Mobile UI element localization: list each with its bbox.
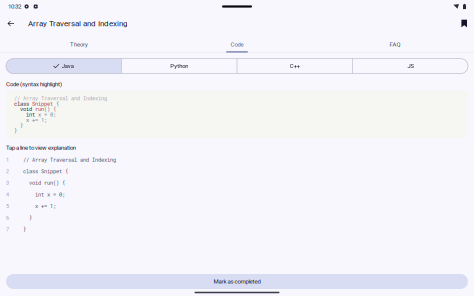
staticText: } <box>14 122 23 129</box>
button[interactable]: Code <box>158 34 316 52</box>
staticText: Python <box>170 63 188 70</box>
staticText: x += 1; <box>23 202 56 209</box>
staticText: FAQ <box>389 41 400 48</box>
button[interactable]: Bookmark <box>455 13 467 34</box>
button[interactable]: Back <box>7 13 21 34</box>
button[interactable]: FAQ <box>316 34 474 52</box>
staticText: Code <box>230 41 243 48</box>
staticText: class <box>14 100 32 107</box>
staticText: 7 <box>6 226 9 233</box>
button[interactable]: 5 <box>6 200 468 212</box>
button[interactable]: 2 <box>6 165 468 177</box>
staticText: int x = 0; <box>23 191 65 198</box>
staticText: 2 <box>6 168 9 175</box>
staticText: class Snippet { <box>23 168 68 175</box>
staticText: 1 <box>6 156 9 163</box>
staticText: Array Traversal and Indexing <box>28 19 127 28</box>
staticText: 10:32 <box>8 3 21 10</box>
staticText: 6 <box>6 214 9 221</box>
staticText: Code (syntax highlight) <box>6 81 62 88</box>
staticText: run <box>35 105 44 112</box>
staticText: 0 <box>50 111 53 118</box>
staticText: void run() { <box>23 179 65 186</box>
staticText: () { <box>44 105 56 112</box>
staticText: // Array Traversal and Indexing <box>23 156 116 163</box>
staticText: JS <box>407 63 413 70</box>
staticText: int <box>14 111 38 118</box>
staticText: } <box>23 226 26 233</box>
staticText: Mark as completed <box>213 278 260 285</box>
staticText: } <box>14 127 17 134</box>
staticText: // Array Traversal and Indexing <box>14 95 107 102</box>
staticText: Theory <box>70 41 88 48</box>
staticText: { <box>53 100 59 107</box>
staticText: C++ <box>290 63 300 70</box>
staticText: Java <box>62 63 74 70</box>
staticText: Tap a line to view explanation <box>6 144 76 151</box>
button[interactable]: Mark as completed <box>6 274 468 289</box>
staticText: x += <box>14 116 41 123</box>
button[interactable]: JS <box>353 59 468 74</box>
button[interactable]: Java <box>6 59 121 74</box>
staticText: 1 <box>41 116 44 123</box>
button[interactable]: 3 <box>6 177 468 189</box>
button[interactable]: 1 <box>6 154 468 165</box>
button[interactable]: C++ <box>237 59 352 74</box>
staticText: ; <box>44 116 47 123</box>
staticText: } <box>23 214 32 221</box>
staticText: void <box>14 105 35 112</box>
button[interactable]: Theory <box>0 34 158 52</box>
button[interactable]: Python <box>122 59 237 74</box>
staticText: 5 <box>6 202 9 209</box>
button[interactable]: 4 <box>6 189 468 200</box>
staticText: Snippet <box>32 100 53 107</box>
staticText: x = <box>38 111 50 118</box>
staticText: 3 <box>6 179 9 186</box>
staticText: 4 <box>6 191 9 198</box>
staticText: ; <box>53 111 56 118</box>
